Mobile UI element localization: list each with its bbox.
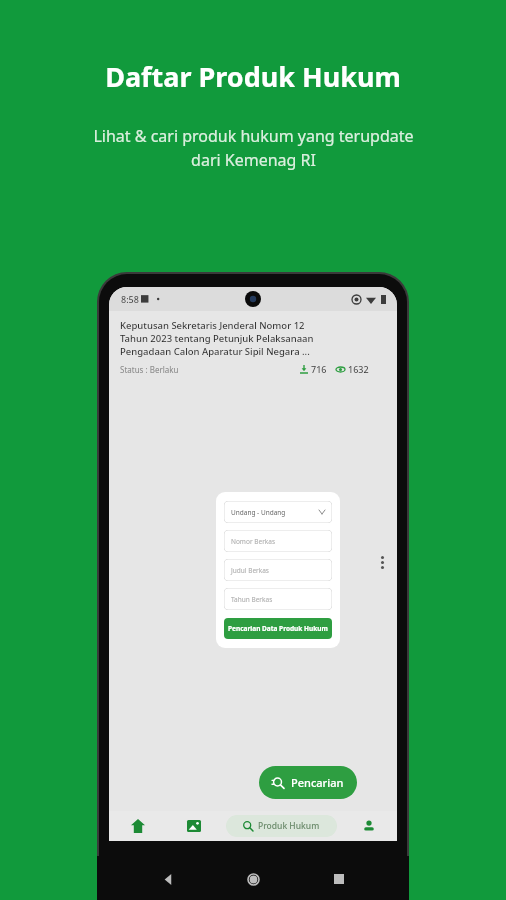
button[interactable]: Pencarian Data Produk Hukum	[224, 618, 332, 639]
staticText: Lihat & cari produk hukum yang terupdate…	[93, 125, 414, 171]
staticText: Produk Hukum	[258, 820, 320, 832]
button[interactable]: Home	[238, 864, 268, 894]
button[interactable]: Pencarian	[259, 766, 357, 799]
button[interactable]: More options	[373, 319, 391, 805]
button[interactable]: Judul Berkas	[224, 559, 332, 581]
staticText: Undang - Undang	[231, 508, 286, 517]
staticText: Pencarian Data Produk Hukum	[228, 624, 328, 633]
button[interactable]: Nomor Berkas	[224, 530, 332, 552]
button[interactable]: Profile	[341, 811, 397, 841]
staticText: Pencarian	[291, 775, 344, 790]
staticText: 8:58	[121, 293, 139, 305]
button[interactable]: Undang - Undang	[224, 501, 332, 523]
button[interactable]: Keputusan Sekretaris Jenderal Nomor 12	[109, 311, 397, 811]
staticText: Tahun Berkas	[231, 595, 273, 604]
button[interactable]: Recents	[324, 864, 354, 894]
button[interactable]: Back	[153, 864, 183, 894]
button[interactable]: Produk Hukum	[226, 815, 337, 837]
staticText: Tahun 2023 tentang Petunjuk Pelaksanaan	[120, 332, 314, 345]
staticText: Keputusan Sekretaris Jenderal Nomor 12	[120, 319, 305, 332]
staticText: Nomor Berkas	[231, 537, 276, 546]
button[interactable]: Tahun Berkas	[224, 588, 332, 610]
button[interactable]: Home	[109, 811, 166, 841]
staticText: 716	[311, 363, 327, 375]
staticText: Judul Berkas	[231, 566, 269, 575]
staticText: Daftar Produk Hukum	[105, 58, 401, 95]
staticText: 1632	[348, 363, 369, 375]
staticText: Status : Berlaku	[120, 364, 179, 375]
staticText: Pengadaan Calon Aparatur Sipil Negara ..…	[120, 345, 310, 358]
button[interactable]: Gallery	[166, 811, 222, 841]
